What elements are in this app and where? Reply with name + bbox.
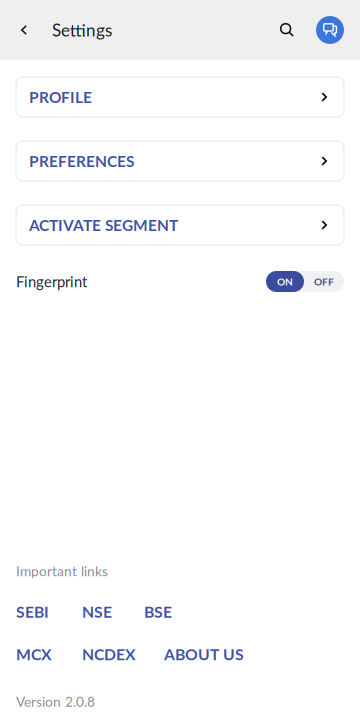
staticText: OFF <box>314 275 334 288</box>
staticText: ACTIVATE SEGMENT <box>29 216 178 234</box>
button[interactable]: PROFILE <box>16 77 344 117</box>
button[interactable]: NCDEX <box>82 645 136 664</box>
staticText: MCX <box>16 645 52 664</box>
staticText: NCDEX <box>82 645 136 664</box>
staticText: PROFILE <box>29 88 92 106</box>
button[interactable]: Search <box>266 8 308 52</box>
staticText: Important links <box>16 563 108 579</box>
button[interactable]: ACTIVATE SEGMENT <box>16 205 344 245</box>
staticText: Fingerprint <box>16 273 87 290</box>
button[interactable]: ABOUT US <box>164 645 244 664</box>
staticText: PREFERENCES <box>29 152 134 170</box>
staticText: BSE <box>144 602 172 621</box>
button[interactable]: ON <box>266 271 304 292</box>
staticText: Version 2.0.8 <box>16 693 95 710</box>
button[interactable]: PREFERENCES <box>16 141 344 181</box>
staticText: ABOUT US <box>164 645 244 664</box>
button[interactable]: Chat support <box>308 8 352 52</box>
button[interactable]: OFF <box>304 271 344 292</box>
button[interactable]: MCX <box>16 645 52 664</box>
staticText: NSE <box>82 602 112 621</box>
staticText: Settings <box>52 20 112 40</box>
staticText: SEBI <box>16 602 49 621</box>
staticText: ON <box>277 275 293 288</box>
button[interactable]: Back <box>0 8 34 52</box>
button[interactable]: BSE <box>144 602 172 621</box>
button[interactable]: NSE <box>82 602 112 621</box>
button[interactable]: SEBI <box>16 602 49 621</box>
